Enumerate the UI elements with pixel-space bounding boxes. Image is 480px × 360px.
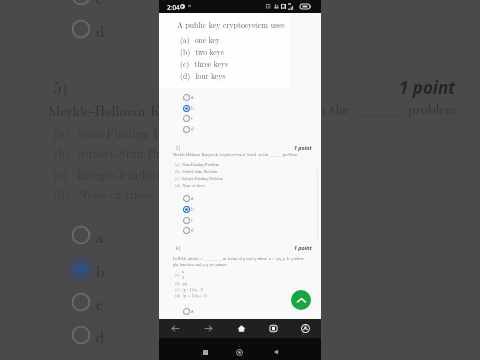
- button[interactable]: d: [183, 225, 205, 235]
- staticText: (d) (p + 1)(q + 1): [175, 293, 208, 298]
- staticText: 1 point: [294, 244, 312, 251]
- button[interactable]: a: [183, 193, 205, 203]
- button[interactable]: Home: [229, 342, 249, 360]
- staticText: (c) Integer-Finding: [53, 165, 163, 183]
- staticText: (a) one key: [180, 34, 220, 45]
- staticText: (a) Sum-Finding P: [53, 124, 162, 142]
- staticText: (d) None of these: [53, 185, 154, 203]
- staticText: d: [191, 227, 194, 234]
- staticText: Merkle-Hellman Knapsack cryptosystem is …: [173, 152, 298, 158]
- staticText: (d) four keys: [180, 70, 226, 81]
- staticText: (b) Subset-Sum Problem: [175, 169, 218, 174]
- staticText: c: [96, 0, 103, 8]
- button[interactable]: Forward: [192, 319, 225, 338]
- staticText: 6): [176, 244, 181, 251]
- staticText: a: [191, 308, 194, 315]
- button[interactable]: c: [183, 215, 205, 225]
- staticText: c: [191, 115, 194, 122]
- button[interactable]: Scroll to top: [291, 290, 311, 310]
- staticText: n the _____ problem.: [318, 99, 461, 118]
- button[interactable]: Tabs: [257, 319, 289, 338]
- button[interactable]: Account: [289, 319, 321, 338]
- staticText: (b) two keys: [180, 46, 224, 57]
- staticText: b: [191, 206, 194, 213]
- staticText: b: [96, 260, 105, 281]
- staticText: phi function and p,q are primes.: [173, 262, 228, 268]
- staticText: (b) pq: [175, 281, 187, 286]
- staticText: (c) Integer-Finding Problem: [175, 176, 224, 181]
- staticText: (d) None of these: [175, 183, 206, 188]
- staticText: 2: [182, 275, 184, 280]
- staticText: d: [96, 20, 105, 41]
- staticText: a: [191, 94, 194, 101]
- staticText: a: [96, 226, 104, 247]
- staticText: 1 point: [399, 76, 456, 99]
- staticText: (a): [175, 272, 180, 277]
- staticText: In RSA, phi(n) = ______ in terms of p an…: [173, 256, 305, 262]
- staticText: b: [191, 105, 194, 112]
- staticText: (b) Subset-Sum Pr: [53, 144, 162, 162]
- button[interactable]: d: [183, 124, 205, 134]
- button[interactable]: b: [183, 204, 205, 214]
- staticText: c: [96, 293, 103, 314]
- button[interactable]: b: [183, 103, 205, 113]
- staticText: c: [191, 217, 194, 224]
- button[interactable]: c: [183, 113, 205, 123]
- staticText: 1 point: [294, 144, 312, 151]
- button[interactable]: Back: [159, 319, 192, 338]
- staticText: 5): [53, 75, 69, 99]
- button[interactable]: Back: [266, 342, 286, 360]
- button[interactable]: a: [183, 92, 205, 102]
- staticText: a: [191, 195, 194, 202]
- staticText: A public key cryptosystem uses: [177, 19, 285, 30]
- staticText: d: [191, 126, 194, 133]
- staticText: n: [182, 269, 185, 274]
- button[interactable]: Recents: [195, 342, 215, 360]
- staticText: 2:04: [167, 3, 180, 12]
- button[interactable]: a: [183, 306, 205, 316]
- staticText: d: [96, 326, 105, 347]
- button[interactable]: Home: [225, 319, 257, 338]
- staticText: Merkle-Hellman Kn: [48, 100, 169, 120]
- staticText: 5): [176, 144, 181, 151]
- staticText: (c) (p - 1)(q - 1): [175, 287, 204, 292]
- staticText: (a) Sum-Finding Problem: [175, 162, 220, 167]
- staticText: (c) three keys: [180, 58, 228, 69]
